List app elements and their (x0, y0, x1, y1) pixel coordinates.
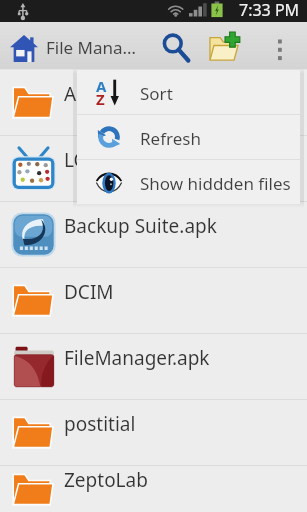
staticText: FileManager.apk (64, 345, 210, 371)
button[interactable]: Search (154, 22, 198, 68)
button[interactable]: FileManager.apk (0, 334, 307, 399)
button[interactable]: DCIM (0, 268, 307, 333)
staticText: ZeptoLab (64, 467, 148, 493)
button[interactable]: Android (0, 70, 307, 135)
staticText: LOOK (64, 147, 116, 173)
staticText: Refresh (140, 127, 201, 150)
button[interactable]: Backup Suite.apk (0, 202, 307, 267)
button[interactable]: Show hiddden files (77, 160, 300, 204)
staticText: DCIM (64, 279, 114, 305)
button[interactable]: LOOK (0, 136, 307, 201)
staticText: A (96, 76, 107, 96)
staticText: Sort (140, 82, 173, 105)
button[interactable]: File Mana… (0, 22, 154, 68)
staticText: postitial (64, 411, 136, 437)
staticText: Android (64, 81, 136, 107)
button[interactable]: A (77, 70, 300, 114)
staticText: 7:33 PM (239, 0, 300, 21)
staticText: File Mana… (46, 36, 137, 59)
staticText: Z (96, 89, 105, 109)
staticText: Backup Suite.apk (64, 213, 217, 239)
button[interactable]: ZeptoLab (0, 466, 307, 512)
button[interactable]: Refresh (77, 115, 300, 159)
button[interactable]: More options (252, 22, 307, 68)
button[interactable]: New folder (198, 22, 252, 68)
staticText: Show hiddden files (140, 172, 291, 195)
button[interactable]: postitial (0, 400, 307, 465)
